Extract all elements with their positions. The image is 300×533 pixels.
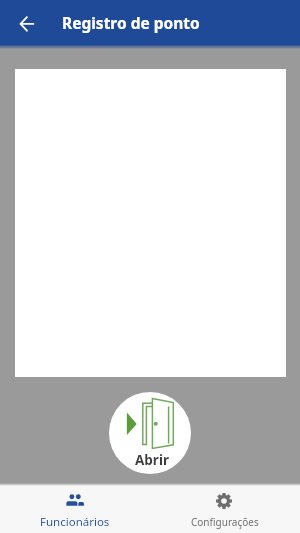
staticText: Abrir [135, 451, 169, 469]
button[interactable]: Configurações [150, 486, 300, 533]
staticText: Registro de ponto [62, 12, 200, 33]
staticText: Funcionários [40, 514, 110, 530]
staticText: Configurações [191, 515, 259, 529]
button[interactable]: Abrir [109, 392, 191, 474]
button[interactable]: Funcionários [0, 486, 150, 533]
button[interactable]: Back [13, 9, 41, 37]
